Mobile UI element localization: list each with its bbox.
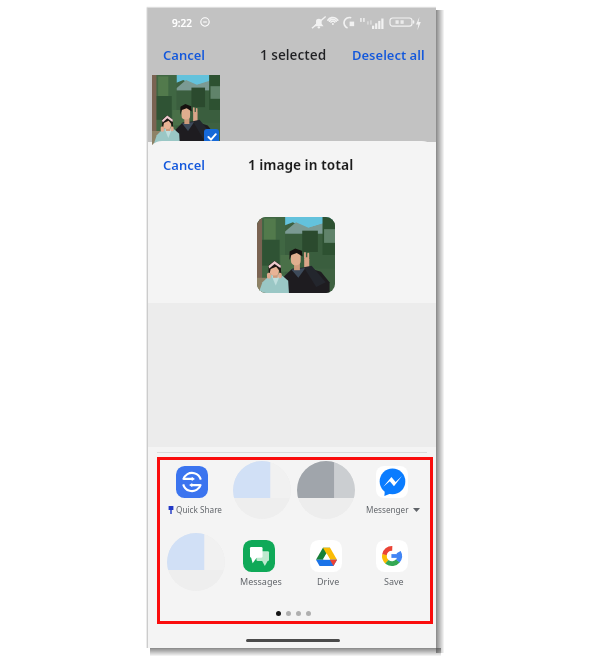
staticText: 9:22	[172, 16, 192, 30]
button[interactable]: Drive	[310, 540, 342, 572]
staticText: Deselect all	[352, 46, 425, 62]
button[interactable]: App	[167, 533, 225, 591]
staticText: Messages	[240, 575, 282, 587]
button[interactable]: Selected photo	[152, 75, 220, 145]
button[interactable]: Deselect all	[346, 42, 431, 66]
staticText: Quick Share	[176, 504, 222, 515]
button[interactable]: App	[233, 461, 291, 519]
staticText: 1 image in total	[248, 156, 354, 174]
button[interactable]: Quick Share	[176, 466, 208, 498]
button[interactable]: Quick Share	[168, 504, 222, 515]
button[interactable]: Save	[361, 575, 427, 587]
button[interactable]: Save to Google	[376, 540, 408, 572]
button[interactable]: App	[297, 461, 355, 519]
button[interactable]: Messages	[228, 575, 294, 587]
button[interactable]: Messages	[243, 540, 275, 572]
staticText: Save	[384, 575, 404, 587]
staticText: Cancel	[163, 156, 206, 174]
staticText: Cancel	[163, 46, 206, 62]
staticText: Messenger	[366, 504, 409, 515]
staticText: 1 selected	[260, 46, 327, 64]
button[interactable]: Drive	[295, 575, 361, 587]
button[interactable]: Image to share	[257, 217, 335, 293]
button[interactable]: Messenger	[376, 466, 408, 498]
button[interactable]: Cancel	[157, 42, 212, 66]
button[interactable]: Messenger	[366, 504, 420, 515]
staticText: Drive	[317, 575, 340, 587]
button[interactable]: Cancel	[157, 152, 212, 178]
